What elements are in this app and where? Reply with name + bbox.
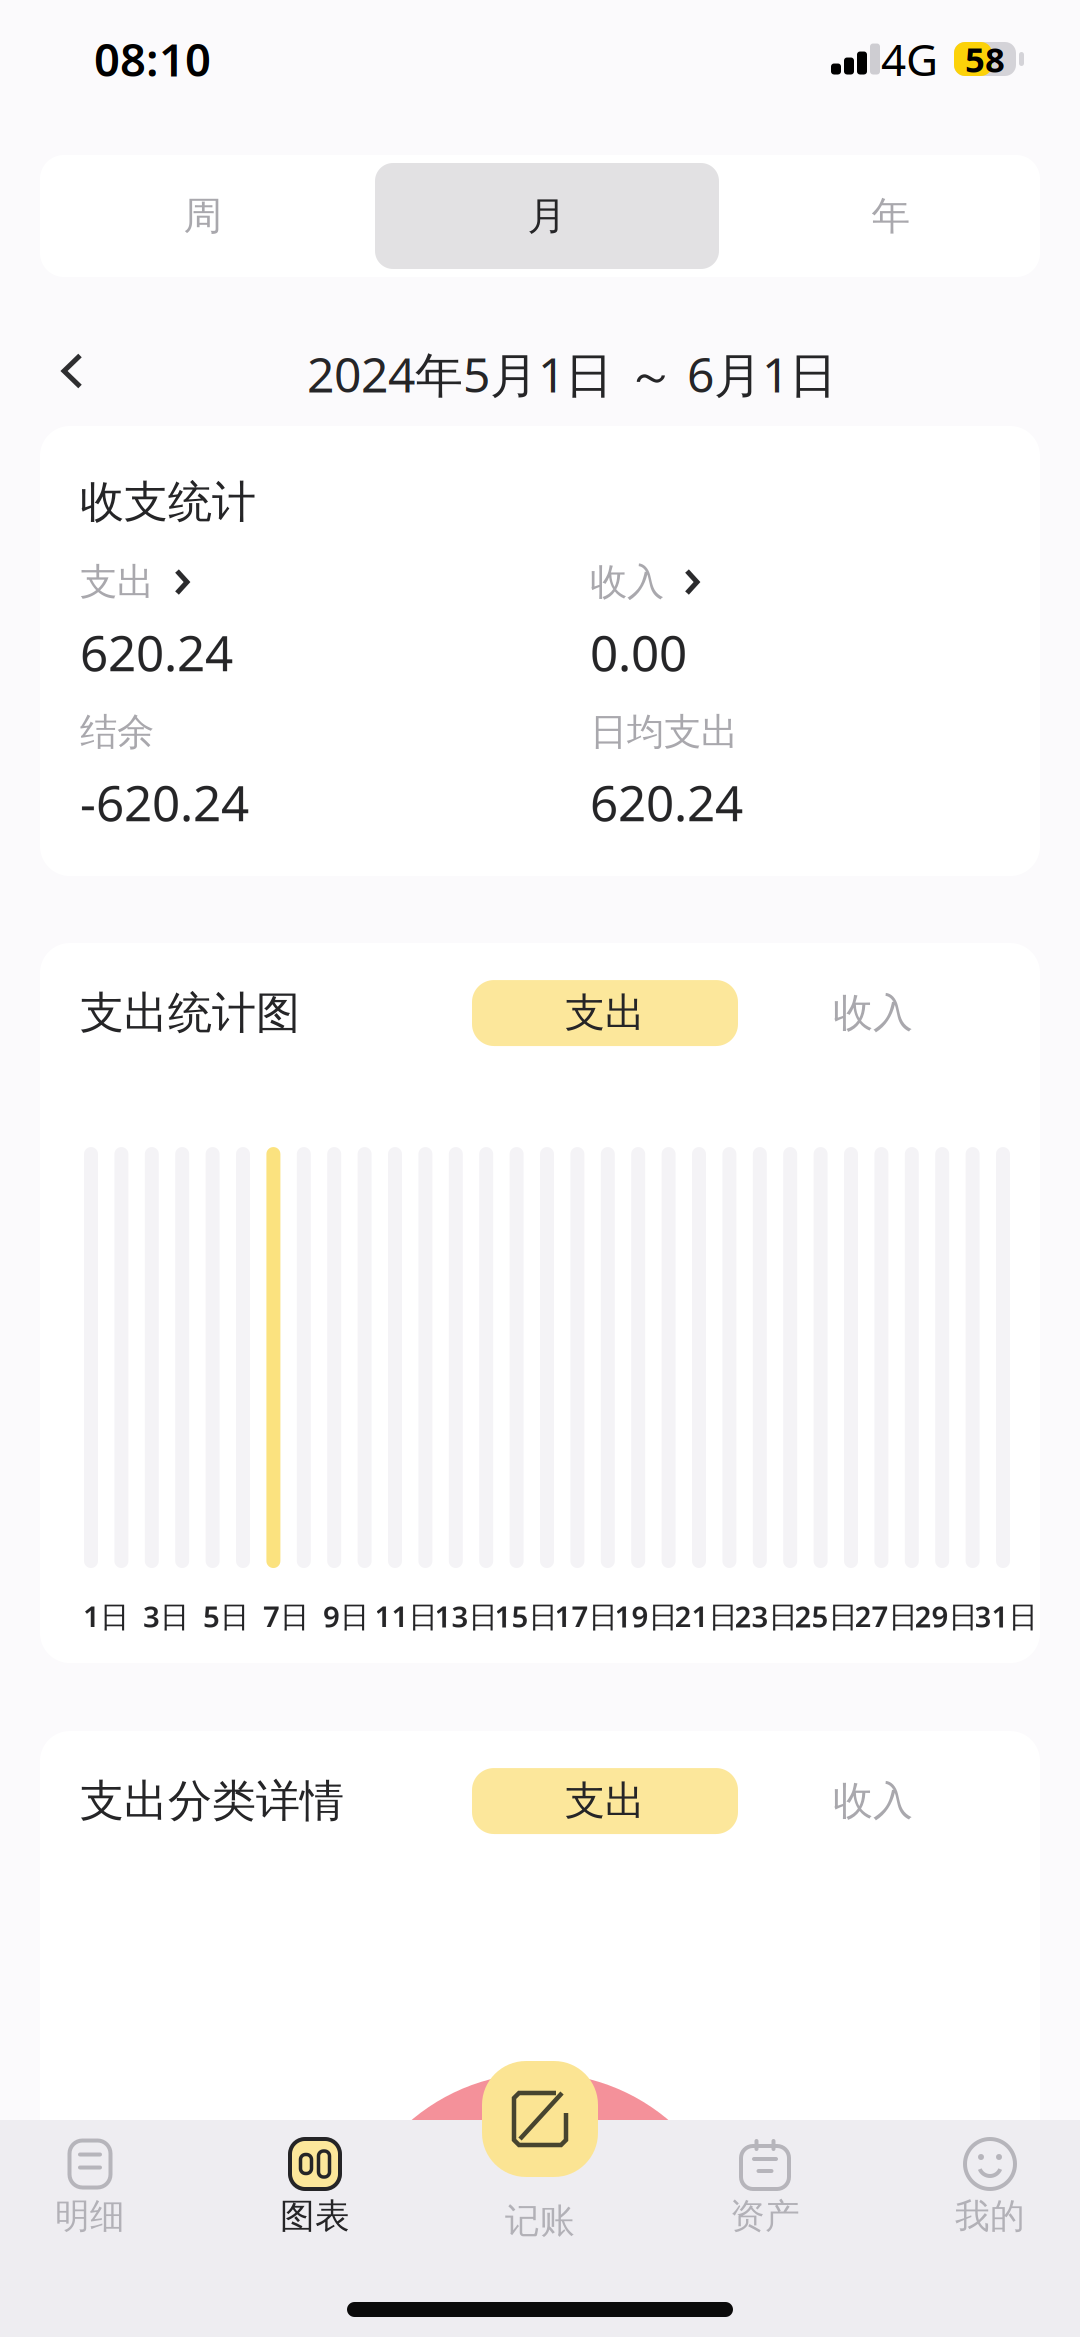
staticText: 收入 [833, 1776, 913, 1826]
staticText: 19日 [614, 1597, 677, 1636]
staticText: 17日 [554, 1597, 617, 1636]
staticText: 明细 [55, 2195, 125, 2238]
staticText: 31日 [974, 1597, 1037, 1636]
staticText: 我的 [955, 2195, 1025, 2238]
staticText: 收入 [590, 559, 664, 605]
button[interactable]: Back [13, 323, 131, 419]
staticText: 620.24 [590, 769, 743, 835]
staticText: 支出统计图 [80, 986, 300, 1040]
staticText: 结余 [80, 709, 154, 755]
button[interactable]: 支出 [472, 1768, 738, 1834]
staticText: 日均支出 [590, 709, 738, 755]
button[interactable]: 周 [31, 163, 375, 269]
button[interactable]: 明细 [0, 2120, 202, 2337]
staticText: 9日 [323, 1597, 369, 1636]
staticText: 5日 [203, 1597, 249, 1636]
staticText: 记账 [505, 2200, 575, 2242]
staticText: 支出分类详情 [80, 1774, 344, 1828]
staticText: 资产 [730, 2195, 800, 2238]
staticText: 收支统计 [80, 475, 256, 529]
staticText: 21日 [674, 1597, 737, 1636]
staticText: 1日 [83, 1597, 129, 1636]
staticText: 0.00 [590, 619, 687, 685]
button[interactable]: 支出 [472, 980, 738, 1046]
staticText: 周 [183, 192, 222, 240]
staticText: 25日 [794, 1597, 857, 1636]
staticText: 年 [871, 192, 910, 240]
button[interactable]: 收入 [740, 980, 1006, 1046]
staticText: 27日 [854, 1597, 917, 1636]
button[interactable]: 资产 [652, 2120, 877, 2337]
button[interactable]: Add record [482, 2061, 598, 2177]
button[interactable]: 我的 [877, 2120, 1080, 2337]
button[interactable]: 记账 [427, 2198, 652, 2244]
staticText: 支出 [565, 1776, 645, 1826]
button[interactable]: 收入 [740, 1768, 1006, 1834]
staticText: 23日 [734, 1597, 797, 1636]
staticText: 收入 [833, 988, 913, 1038]
button[interactable]: 月 [375, 163, 719, 269]
button[interactable]: 图表 [202, 2120, 427, 2337]
staticText: 15日 [494, 1597, 557, 1636]
staticText: 图表 [280, 2195, 350, 2238]
staticText: 支出 [565, 988, 645, 1038]
staticText: 支出 [80, 559, 154, 605]
staticText: 08:10 [94, 29, 211, 89]
staticText: 7日 [263, 1597, 309, 1636]
staticText: 4G [881, 30, 938, 88]
staticText: 620.24 [80, 619, 233, 685]
staticText: 3日 [143, 1597, 189, 1636]
staticText: 2024年5月1日 ～ 6月1日 [307, 342, 837, 406]
staticText: 29日 [914, 1597, 977, 1636]
staticText: 58 [965, 36, 1005, 82]
staticText: 月 [527, 192, 566, 240]
staticText: 13日 [434, 1597, 497, 1636]
staticText: 11日 [374, 1597, 437, 1636]
staticText: -620.24 [80, 769, 249, 835]
button[interactable]: 年 [719, 163, 1063, 269]
